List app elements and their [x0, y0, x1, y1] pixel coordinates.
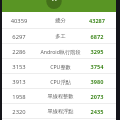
- staticText: 3980: [81, 78, 113, 86]
- staticText: 43287: [81, 17, 113, 25]
- staticText: 2286: [2, 48, 36, 56]
- button[interactable]: 1958: [2, 89, 116, 104]
- staticText: 總分: [38, 17, 83, 24]
- button[interactable]: 40359: [2, 12, 116, 29]
- staticText: 40359: [2, 17, 36, 25]
- staticText: 6872: [81, 33, 113, 41]
- staticText: 3913: [2, 78, 36, 86]
- button[interactable]: 6297: [2, 29, 116, 44]
- staticText: 3295: [81, 48, 113, 56]
- button[interactable]: 3153: [2, 59, 116, 74]
- staticText: 多工: [38, 33, 83, 40]
- staticText: 單線程浮點: [38, 108, 83, 115]
- staticText: 1958: [2, 93, 36, 101]
- staticText: 2320: [2, 108, 36, 116]
- staticText: 2435: [81, 108, 113, 116]
- staticText: 單線程整數: [38, 93, 83, 100]
- staticText: CPU整數: [38, 63, 83, 70]
- button[interactable]: 2286: [2, 44, 116, 59]
- button[interactable]: 2320: [2, 104, 116, 119]
- button[interactable]: 3913: [2, 74, 116, 89]
- staticText: CPU浮點: [38, 78, 83, 85]
- staticText: 3153: [2, 63, 36, 71]
- staticText: Android執行階段: [38, 48, 83, 55]
- staticText: 6297: [2, 33, 36, 41]
- staticText: 2073: [81, 93, 113, 101]
- button[interactable]: Total score: [2, 0, 116, 12]
- staticText: 3754: [81, 63, 113, 71]
